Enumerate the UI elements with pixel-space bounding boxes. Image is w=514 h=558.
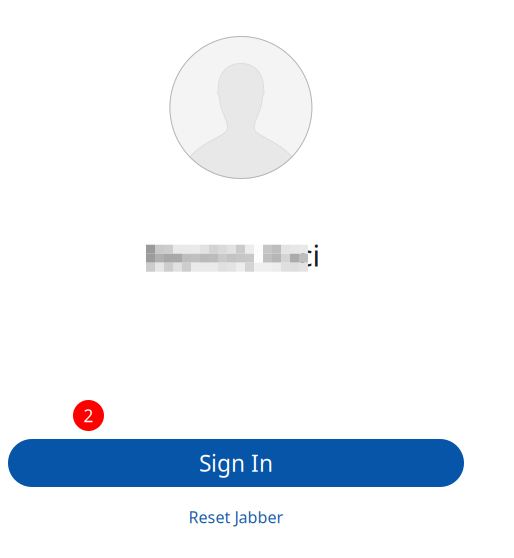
staticText: Sign In [199, 448, 273, 478]
button[interactable]: Reset Jabber [156, 505, 316, 529]
button[interactable]: Sign In [8, 439, 464, 487]
staticText: ci [298, 235, 320, 274]
staticText: Reset Jabber [188, 506, 283, 528]
staticText: 2 [83, 404, 93, 427]
